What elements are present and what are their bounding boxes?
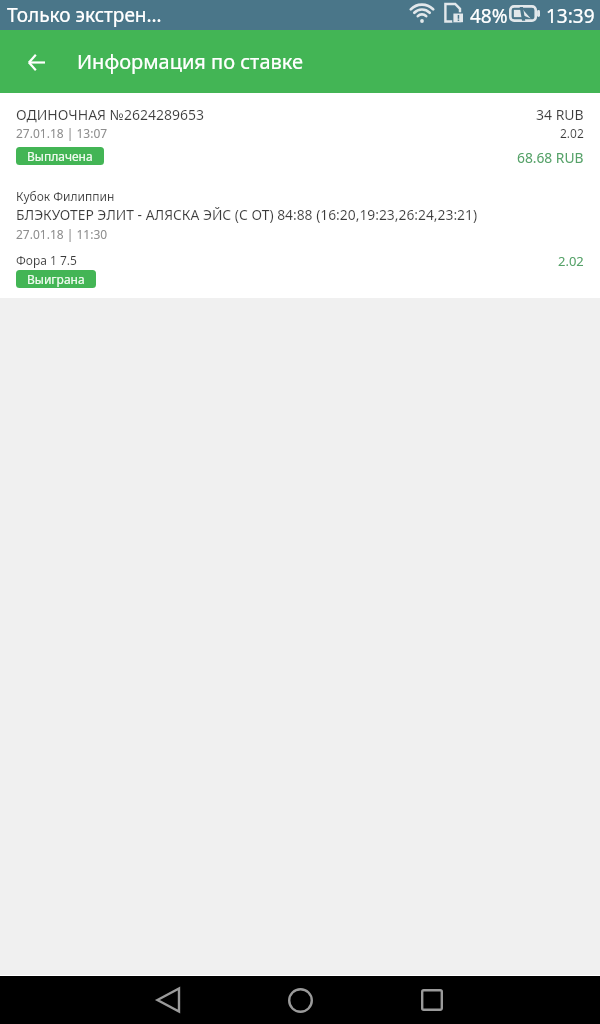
staticText: 48%	[470, 3, 508, 29]
staticText: 27.01.18 | 13:07	[16, 125, 108, 141]
button[interactable]: Выиграна	[16, 270, 96, 288]
staticText: 13:39	[546, 3, 595, 29]
button[interactable]: Back	[134, 976, 202, 1024]
button[interactable]: Выплачена	[16, 147, 104, 165]
staticText: Выиграна	[27, 271, 85, 287]
staticText: 27.01.18 | 11:30	[16, 226, 108, 242]
button[interactable]: Кубок Филиппин	[0, 175, 600, 298]
staticText: Фора 1 7.5	[16, 252, 77, 268]
button[interactable]: ОДИНОЧНАЯ №2624289653	[0, 93, 600, 175]
staticText: 68.68 RUB	[517, 148, 584, 167]
staticText: Выплачена	[27, 148, 93, 164]
button[interactable]: Recents	[398, 976, 466, 1024]
staticText: ОДИНОЧНАЯ №2624289653	[16, 105, 205, 124]
staticText: 2.02	[560, 125, 584, 141]
button[interactable]: Home	[266, 976, 334, 1024]
staticText: БЛЭКУОТЕР ЭЛИТ - АЛЯСКА ЭЙС (С ОТ) 84:88…	[16, 205, 478, 224]
staticText: Кубок Филиппин	[16, 188, 115, 204]
button[interactable]: Back	[14, 40, 58, 84]
staticText: Только экстрен…	[7, 2, 162, 28]
staticText: Информация по ставке	[77, 48, 304, 75]
staticText: 34 RUB	[536, 105, 584, 124]
staticText: 2.02	[558, 252, 584, 270]
